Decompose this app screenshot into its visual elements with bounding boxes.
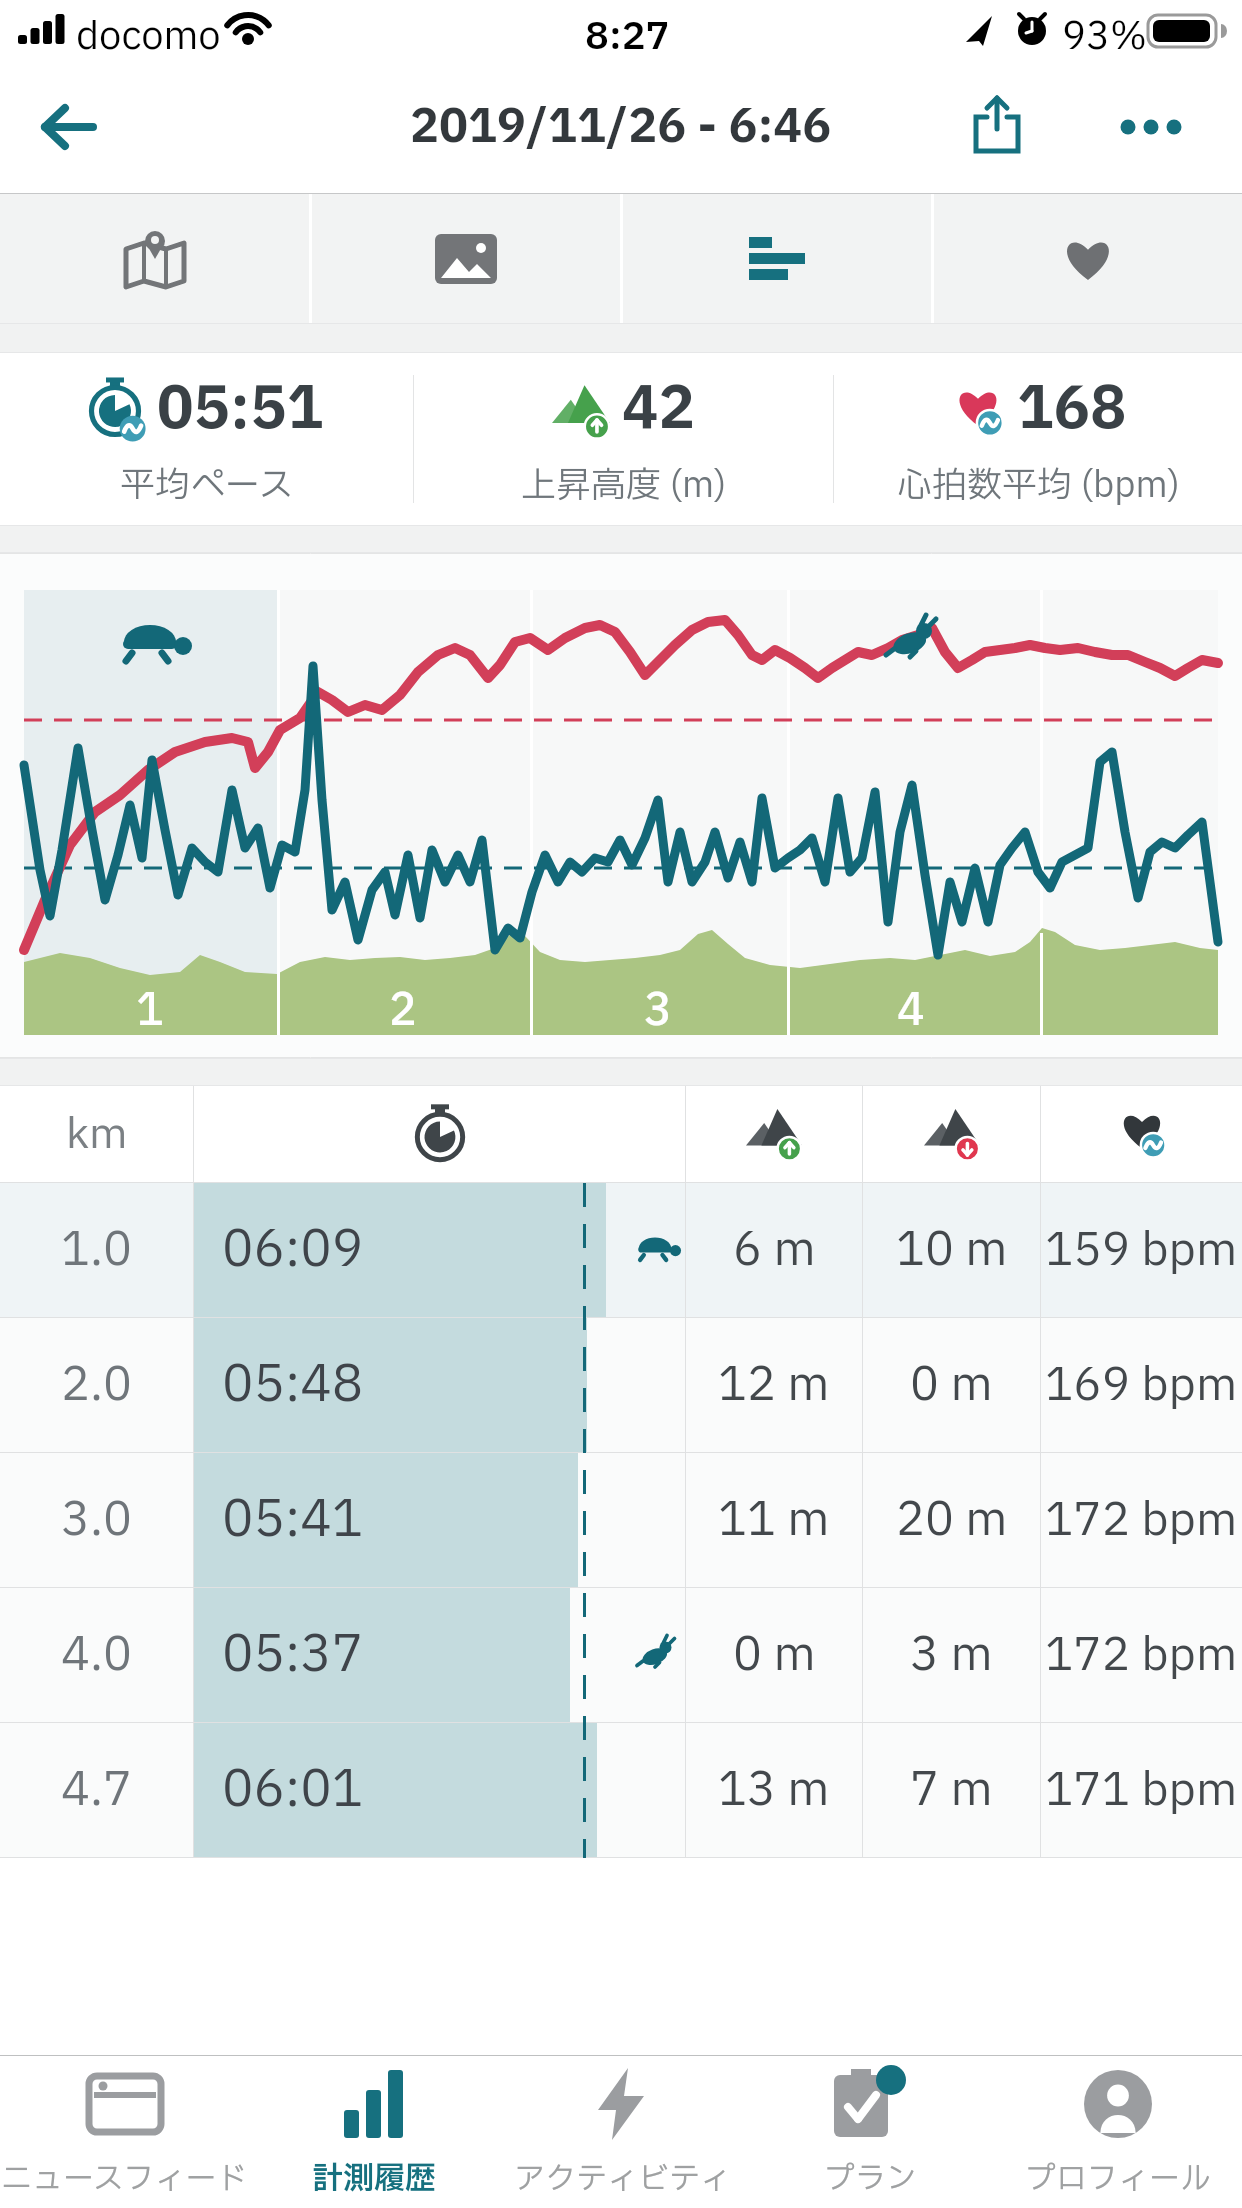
button[interactable]: プロフィール: [994, 2056, 1242, 2208]
staticText: 05:48: [222, 1348, 364, 1423]
staticText: 4: [897, 978, 925, 1030]
staticText: 心拍数平均 (bpm): [897, 460, 1180, 512]
staticText: 0 m: [733, 1621, 816, 1690]
staticText: 169 bpm: [1045, 1352, 1238, 1419]
staticText: docomo: [76, 9, 221, 66]
staticText: km: [66, 1103, 128, 1166]
staticText: 11 m: [718, 1486, 830, 1555]
button[interactable]: プラン: [746, 2056, 994, 2208]
button[interactable]: アクティビティ: [498, 2056, 746, 2208]
button[interactable]: [24, 92, 114, 162]
button[interactable]: [312, 194, 620, 323]
button[interactable]: [934, 194, 1242, 323]
staticText: 06:01: [222, 1753, 364, 1828]
button[interactable]: [952, 86, 1042, 164]
staticText: 2.0: [61, 1351, 133, 1420]
staticText: ニュースフィード: [1, 2156, 248, 2202]
staticText: 8:27: [585, 9, 670, 66]
staticText: 42: [622, 367, 696, 454]
staticText: 10 m: [896, 1216, 1008, 1285]
button[interactable]: [623, 194, 931, 323]
staticText: 13 m: [718, 1756, 830, 1825]
staticText: 2019/11/26 - 6:46: [410, 93, 832, 162]
staticText: 2: [389, 978, 417, 1030]
staticText: 20 m: [896, 1486, 1008, 1555]
staticText: 05:41: [222, 1483, 364, 1558]
staticText: 1.0: [61, 1216, 133, 1285]
staticText: 3 m: [910, 1621, 993, 1690]
staticText: 4.0: [61, 1621, 133, 1690]
staticText: 12 m: [718, 1351, 830, 1420]
button[interactable]: 4.7: [0, 1723, 1242, 1858]
staticText: アクティビティ: [514, 2156, 731, 2202]
staticText: プラン: [824, 2156, 917, 2202]
button[interactable]: [0, 194, 309, 323]
button[interactable]: 3.0: [0, 1453, 1242, 1588]
button[interactable]: 1.0: [0, 1183, 1242, 1318]
button[interactable]: 2.0: [0, 1318, 1242, 1453]
staticText: 172 bpm: [1045, 1622, 1238, 1689]
staticText: 06:09: [222, 1213, 364, 1288]
button[interactable]: 計測履歴: [249, 2056, 498, 2208]
staticText: 3.0: [61, 1486, 133, 1555]
staticText: 172 bpm: [1045, 1487, 1238, 1554]
staticText: 159 bpm: [1045, 1217, 1238, 1284]
staticText: 0 m: [910, 1351, 993, 1420]
staticText: 05:51: [157, 367, 324, 454]
staticText: プロフィール: [1025, 2156, 1211, 2202]
staticText: 3: [644, 978, 672, 1030]
staticText: 93%: [1062, 9, 1147, 66]
button[interactable]: [1096, 88, 1206, 166]
button[interactable]: ニュースフィード: [0, 2056, 249, 2208]
staticText: 05:37: [222, 1618, 364, 1693]
staticText: 171 bpm: [1045, 1757, 1238, 1824]
staticText: 6 m: [733, 1216, 816, 1285]
staticText: 4.7: [61, 1756, 133, 1825]
staticText: 168: [1017, 367, 1127, 454]
staticText: 平均ペース: [120, 460, 294, 512]
button[interactable]: 4.0: [0, 1588, 1242, 1723]
staticText: 上昇高度 (m): [521, 460, 727, 512]
staticText: 1: [136, 978, 164, 1030]
staticText: 計測履歴: [312, 2156, 436, 2202]
staticText: 7 m: [910, 1756, 993, 1825]
